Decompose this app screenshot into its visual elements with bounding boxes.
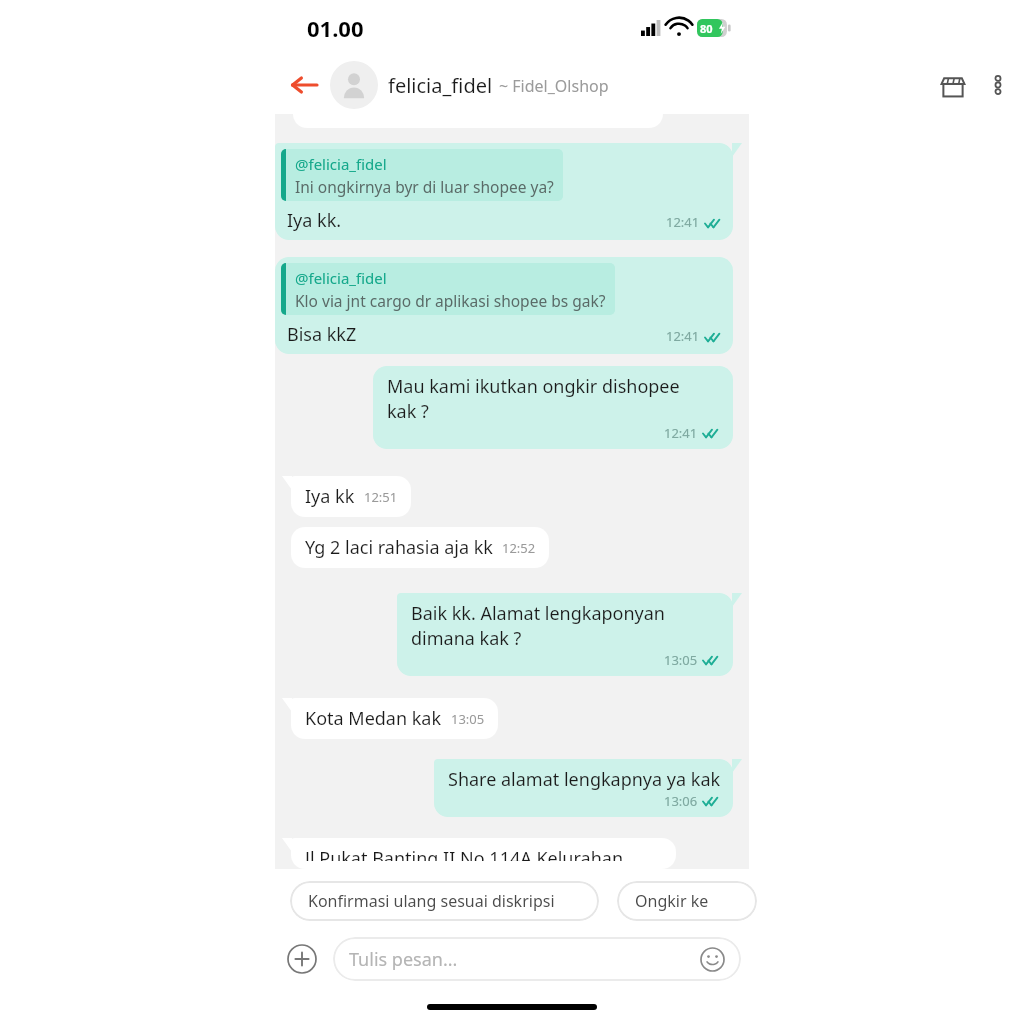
staticText: 13:05 <box>451 710 485 728</box>
button[interactable]: Ongkir ke pontia <box>617 881 757 921</box>
other: Emoji <box>700 947 725 972</box>
staticText: Yg 2 laci rahasia aja kk <box>305 535 493 560</box>
staticText: Ini ongkirnya byr di luar shopee ya? <box>295 176 554 197</box>
staticText: Bisa kkZ <box>287 322 357 347</box>
button[interactable]: Jl Pukat Banting II No.114A Kelurahan Ba… <box>291 838 676 869</box>
button[interactable]: Attach <box>283 940 321 978</box>
staticText: Mau kami ikutkan ongkir dishopee kak ? <box>387 374 721 424</box>
staticText: 80 <box>700 21 713 36</box>
staticText: Ongkir ke pontia <box>635 890 739 912</box>
staticText: 13:06 <box>664 792 698 810</box>
staticText: Iya kk. <box>287 208 342 233</box>
staticText: 12:41 <box>666 327 700 345</box>
button[interactable]: Baik kk. Alamat lengkaponyan dimana kak … <box>397 593 733 676</box>
staticText: Klo via jnt cargo dr aplikasi shopee bs … <box>295 290 606 311</box>
staticText: Tulis pesan... <box>349 947 458 972</box>
staticText: 13:05 <box>664 651 698 669</box>
button[interactable]: Yg 2 laci rahasia aja kk <box>291 527 549 568</box>
button[interactable]: More options <box>976 63 1020 107</box>
staticText: 12:52 <box>502 539 536 557</box>
staticText: ~ Fidel_Olshop <box>499 75 609 97</box>
button[interactable]: Konfirmasi ulang sesuai diskripsi p... <box>290 881 599 921</box>
staticText: @felicia_fidel <box>295 154 387 174</box>
staticText: Share alamat lengkapnya ya kak <box>448 767 721 792</box>
staticText: Konfirmasi ulang sesuai diskripsi p... <box>308 890 581 912</box>
button[interactable]: felicia_fidel <box>388 72 930 99</box>
button[interactable]: @felicia_fidel <box>275 257 733 354</box>
staticText: Jl Pukat Banting II No.114A Kelurahan Ba… <box>305 846 663 861</box>
button[interactable]: Back <box>282 63 326 107</box>
button[interactable]: Iya kk <box>291 476 411 517</box>
staticText: 01.00 <box>307 13 364 43</box>
staticText: Iya kk <box>305 484 355 509</box>
button[interactable]: Kota Medan kak <box>291 698 498 739</box>
staticText: 12:51 <box>364 488 398 506</box>
staticText: 12:41 <box>664 424 698 442</box>
button[interactable]: Tulis pesan... <box>333 937 741 981</box>
staticText: 12:41 <box>666 213 700 231</box>
button[interactable]: Shop <box>930 62 976 108</box>
button[interactable]: Share alamat lengkapnya ya kak <box>434 759 733 817</box>
staticText: @felicia_fidel <box>295 268 387 288</box>
button[interactable]: @felicia_fidel <box>275 143 733 240</box>
staticText: Baik kk. Alamat lengkaponyan dimana kak … <box>411 601 721 651</box>
staticText: Kota Medan kak <box>305 706 442 731</box>
button[interactable]: Profile photo <box>330 61 378 109</box>
button[interactable]: Mau kami ikutkan ongkir dishopee kak ? <box>373 366 733 449</box>
staticText: felicia_fidel <box>388 72 493 99</box>
